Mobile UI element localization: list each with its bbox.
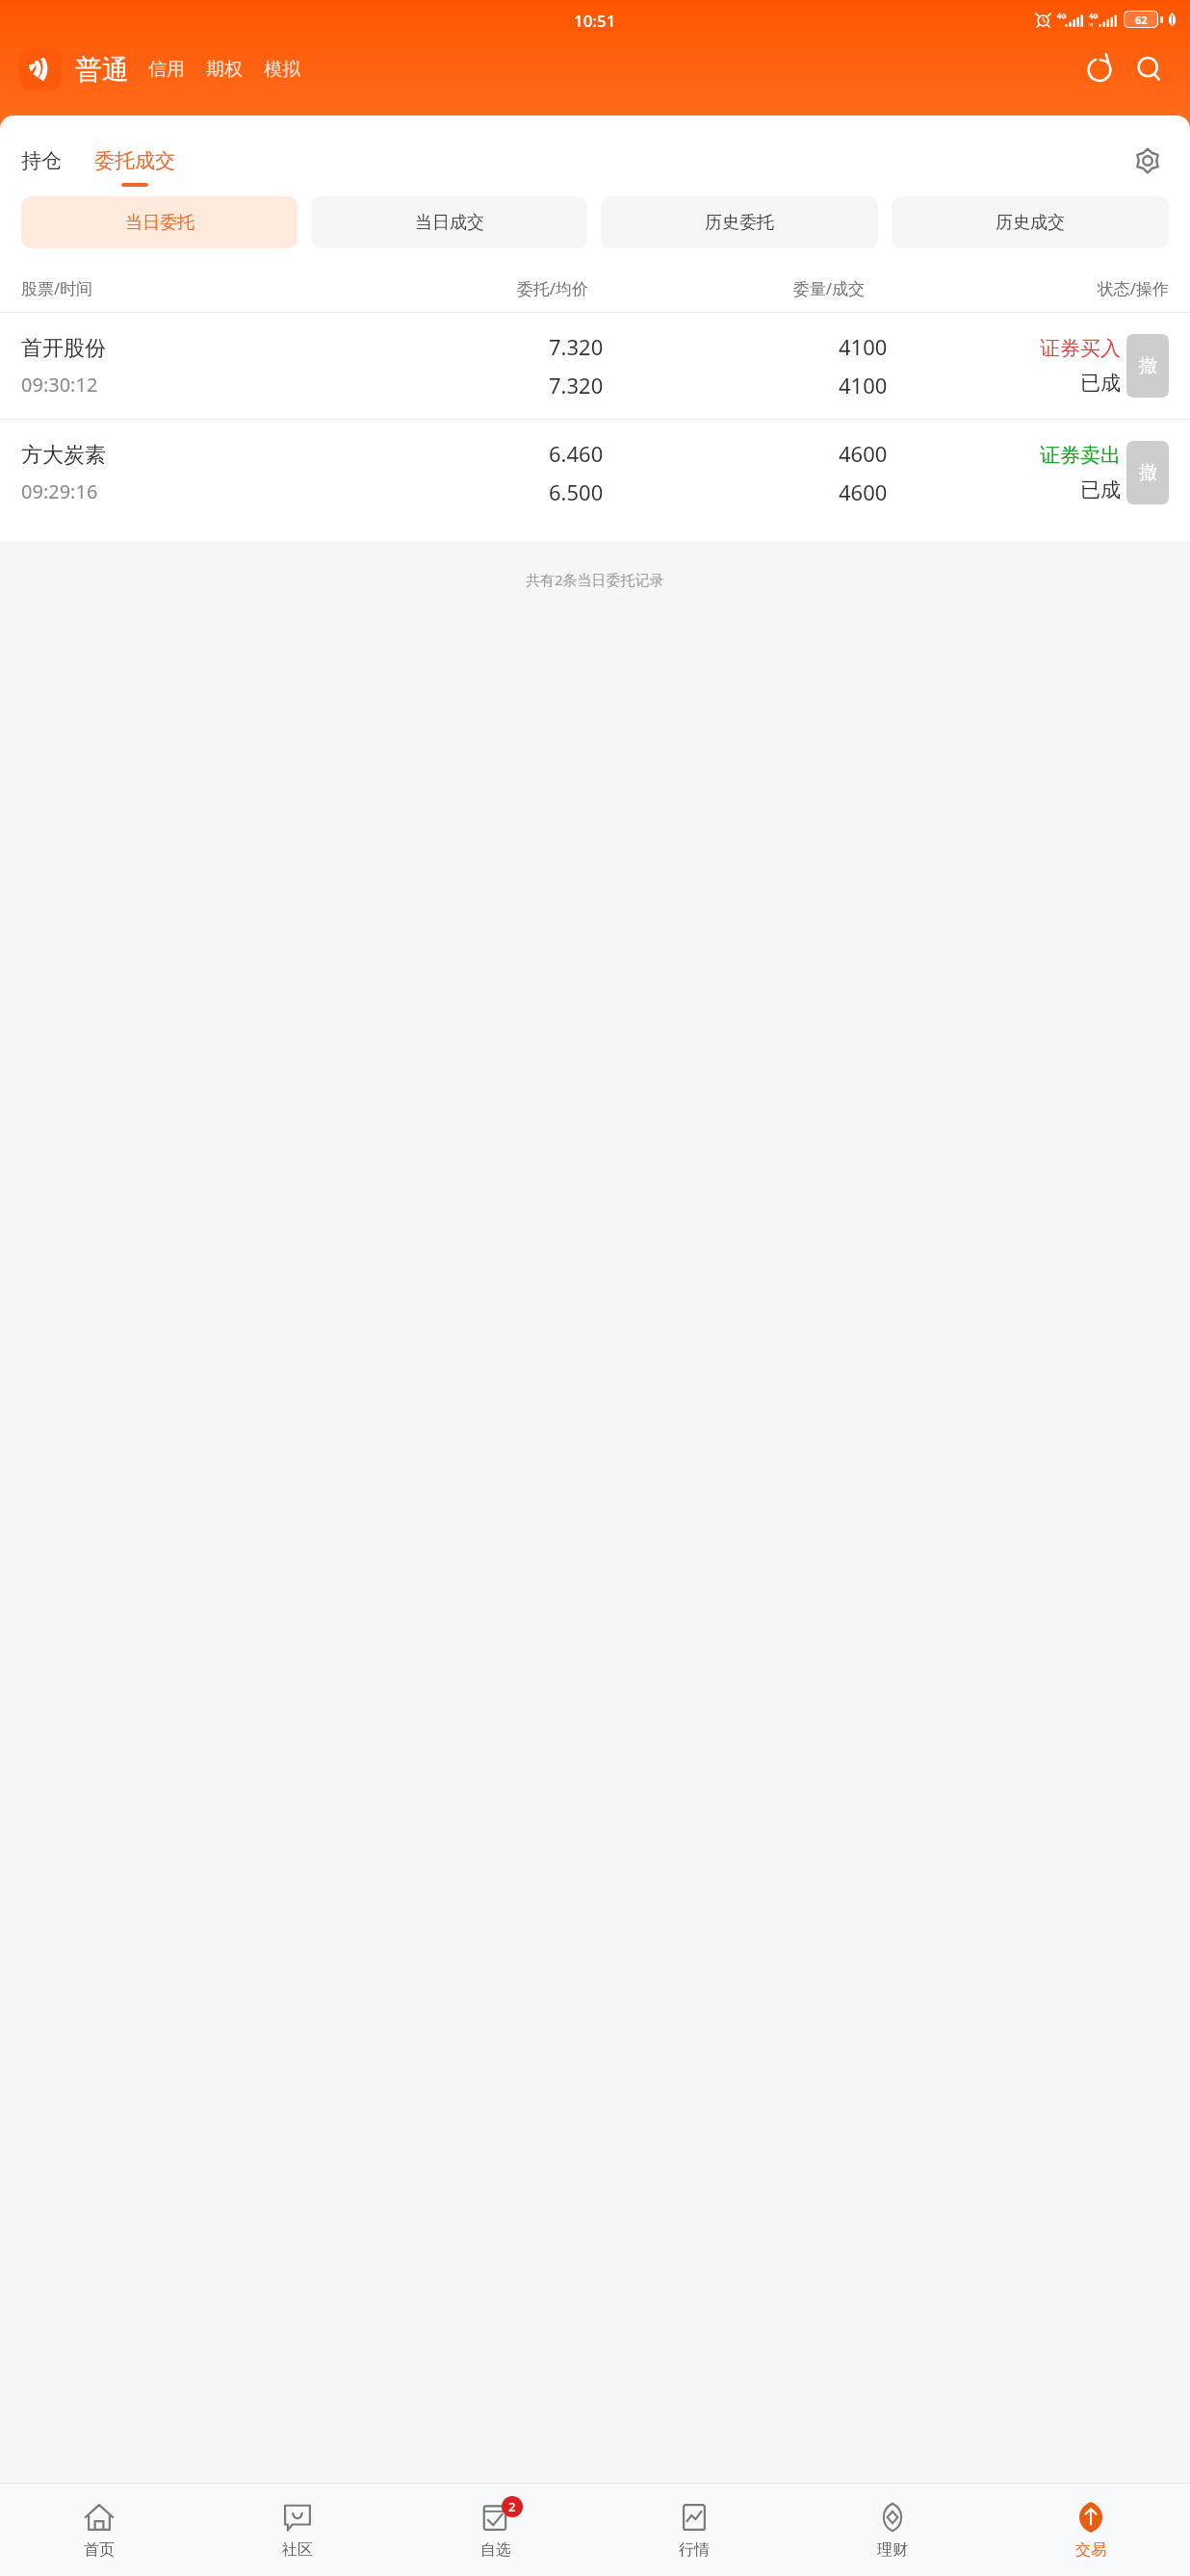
button[interactable]: 行情 [595,2484,793,2576]
button[interactable]: 当日委托 [21,196,297,248]
staticText: 62 [1135,13,1148,27]
button[interactable]: Search [1128,48,1171,90]
button[interactable]: 2 [397,2484,595,2576]
staticText: 理财 [877,2540,908,2560]
staticText: 已成 [1080,477,1121,502]
staticText: 方大炭素 [21,442,106,469]
staticText: 首页 [84,2540,115,2560]
staticText: 普通 [75,53,129,87]
staticText: 委托成交 [94,148,175,173]
staticText: 10:51 [574,10,616,32]
staticText: 首开股份 [21,335,106,362]
button[interactable]: 方大炭素 [0,420,1190,526]
button[interactable]: 理财 [793,2484,992,2576]
button[interactable]: 当日成交 [311,196,587,248]
staticText: 4600 [839,477,888,506]
button[interactable]: 信用 [148,58,185,81]
staticText: 股票/时间 [21,277,312,299]
staticText: 委量/成交 [588,277,865,299]
staticText: 当日委托 [125,212,194,234]
button[interactable]: 委托成交 [94,129,175,193]
staticText: 证券卖出 [1040,443,1121,468]
staticText: 7.320 [549,371,604,399]
staticText: 撤 [1139,461,1157,484]
staticText: 证券买入 [1040,336,1121,361]
button[interactable]: Refresh [1078,48,1121,90]
button[interactable]: 模拟 [264,58,300,81]
staticText: 4100 [839,332,888,361]
button[interactable]: 普通 [75,53,129,87]
staticText: 撤 [1139,354,1157,377]
staticText: 2 [508,2498,516,2515]
button[interactable]: 历史委托 [601,196,878,248]
button[interactable]: Settings [1125,138,1171,184]
staticText: 共有2条当日委托记录 [526,570,664,589]
staticText: 期权 [206,58,243,81]
staticText: 交易 [1075,2540,1106,2560]
staticText: 6.460 [549,439,604,468]
button[interactable]: 持仓 [21,129,62,193]
button[interactable]: App logo [19,48,62,90]
staticText: 自选 [480,2540,511,2560]
button[interactable]: 期权 [206,58,243,81]
staticText: 09:29:16 [21,478,98,504]
staticText: 6.500 [549,477,604,506]
staticText: 09:30:12 [21,372,98,398]
button[interactable]: 交易 [992,2484,1190,2576]
staticText: 行情 [679,2540,710,2560]
button[interactable]: 撤 [1126,441,1169,504]
staticText: 已成 [1080,371,1121,396]
staticText: 委托/均价 [312,277,588,299]
staticText: 持仓 [21,148,62,173]
button[interactable]: 首页 [0,2484,198,2576]
staticText: 当日成交 [415,212,484,234]
staticText: 4100 [839,371,888,399]
button[interactable]: 首开股份 [0,313,1190,419]
staticText: 信用 [148,58,185,81]
staticText: 7.320 [549,332,604,361]
staticText: 状态/操作 [865,277,1169,299]
staticText: 4600 [839,439,888,468]
button[interactable]: 社区 [198,2484,397,2576]
staticText: 模拟 [264,58,300,81]
staticText: 历史委托 [705,212,774,234]
staticText: 历史成交 [996,212,1065,234]
button[interactable]: 历史成交 [892,196,1169,248]
button[interactable]: 撤 [1126,334,1169,398]
staticText: 社区 [282,2540,313,2560]
